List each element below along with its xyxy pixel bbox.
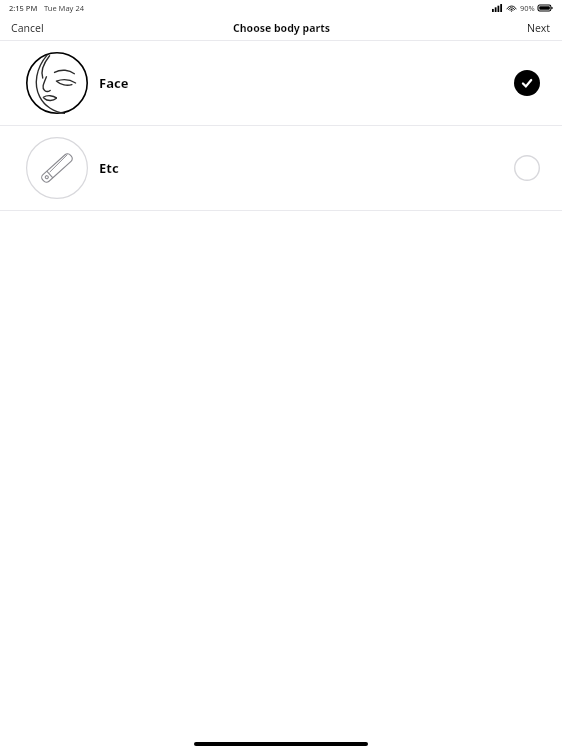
button[interactable]: Cancel — [0, 17, 55, 39]
button[interactable]: Not selected, Etc — [514, 155, 540, 181]
staticText: Cancel — [11, 21, 44, 35]
staticText: 2:15 PM — [9, 3, 38, 13]
button[interactable]: Face — [0, 41, 562, 125]
button[interactable]: Next — [516, 17, 562, 39]
button[interactable]: Etc — [0, 126, 562, 210]
staticText: Next — [527, 21, 551, 35]
button[interactable]: Selected, Face — [514, 70, 540, 96]
staticText: 90% — [520, 3, 535, 13]
staticText: Etc — [99, 159, 119, 177]
staticText: Face — [99, 74, 129, 92]
staticText: Tue May 24 — [44, 3, 84, 13]
staticText: Choose body parts — [233, 21, 330, 35]
